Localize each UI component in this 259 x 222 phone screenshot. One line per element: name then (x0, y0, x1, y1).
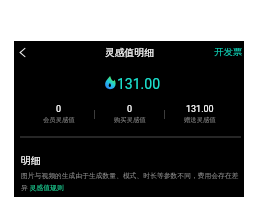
staticText: 赠送灵感值 (184, 116, 216, 124)
staticText: 灵感值明细 (105, 47, 154, 59)
staticText: 131.00 (117, 76, 161, 92)
staticText: 购买灵感值 (114, 116, 146, 124)
staticText: 开发票 (214, 46, 243, 58)
staticText: 0 (56, 104, 62, 115)
staticText: 0 (127, 104, 133, 115)
staticText: 图片与视频的生成由于生成数量、模式、时长等参数不同，费用会存在差异 灵感值规则 (21, 171, 239, 192)
staticText: 会员灵感值 (43, 116, 75, 124)
staticText: 明细 (21, 155, 41, 167)
button[interactable]: Back (14, 44, 31, 61)
button[interactable]: 开发票 (211, 43, 244, 61)
staticText: 131.00 (186, 104, 214, 115)
